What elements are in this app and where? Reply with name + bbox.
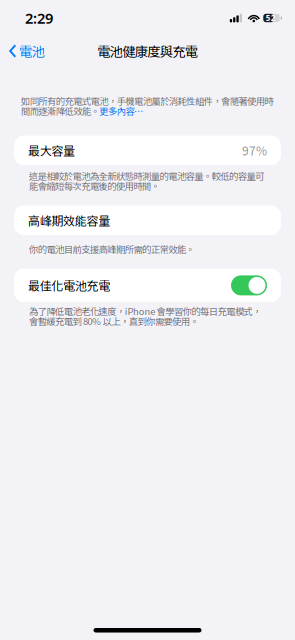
staticText: 電池 [19, 41, 45, 61]
staticText: 最佳化電池充電 [28, 277, 110, 294]
staticText: 電池健康度與充電 [97, 41, 198, 61]
button[interactable]: 高峰期效能容量 [14, 206, 281, 235]
staticText: 2:29 [25, 8, 53, 28]
button[interactable]: 電池 [0, 37, 45, 65]
button[interactable]: 最佳化電池充電 [231, 275, 267, 295]
staticText: 為了降低電池老化速度，iPhone 會學習你的每日充電模式，會暫緩充電到 80%… [29, 304, 261, 328]
staticText: 52 [266, 13, 276, 23]
staticText: 如同所有的充電式電池，手機電池屬於消耗性組件，會隨著使用時間而逐漸降低效能。更多… [21, 94, 274, 117]
staticText: 這是相較於電池為全新狀態時測量的電池容量。較低的容量可能會縮短每次充電後的使用時… [29, 169, 264, 192]
button[interactable]: 最佳化電池充電 [14, 269, 281, 302]
staticText: 你的電池目前支援高峰期所需的正常效能。 [29, 242, 195, 256]
staticText: 最大容量 [28, 142, 75, 159]
staticText: 高峰期效能容量 [28, 212, 110, 229]
button[interactable]: 最大容量 [14, 135, 281, 165]
staticText: 97% [242, 142, 267, 159]
